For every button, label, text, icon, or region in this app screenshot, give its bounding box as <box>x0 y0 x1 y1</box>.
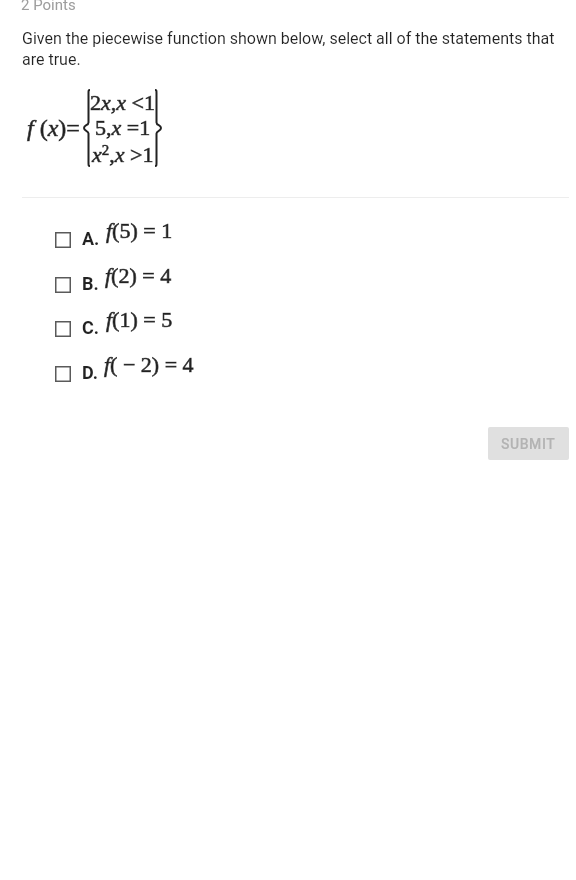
other: Select answer D. <box>55 366 71 382</box>
button[interactable]: Select answer C. <box>0 315 576 343</box>
staticText: SUBMIT <box>501 436 556 452</box>
other: Select answer C. <box>55 321 71 337</box>
button[interactable]: SUBMIT <box>488 427 569 460</box>
button[interactable]: Select answer D. <box>0 360 576 388</box>
staticText: x2,x >1 <box>92 142 154 167</box>
staticText: 2x,x <1 <box>90 90 155 114</box>
other: Select answer B. <box>55 277 71 293</box>
staticText: 5,x =1 <box>95 115 151 139</box>
staticText: f(5) = 1 <box>106 218 173 242</box>
staticText: f(1) = 5 <box>106 307 173 331</box>
staticText: f (x)= <box>27 115 80 142</box>
staticText: 5,x =1 <box>95 115 151 139</box>
staticText: C. <box>82 317 100 338</box>
staticText: f( − 2) = 4 <box>104 352 194 376</box>
staticText: A. <box>82 228 100 249</box>
staticText: f(1) = 5 <box>106 307 173 331</box>
staticText: x2,x >1 <box>92 142 154 167</box>
other: Select answer A. <box>55 232 71 248</box>
staticText: f( − 2) = 4 <box>104 352 194 376</box>
staticText: D. <box>82 362 98 383</box>
staticText: f(2) = 4 <box>105 263 172 287</box>
staticText: f (x)= <box>27 115 80 142</box>
button[interactable]: Select answer B. <box>0 271 576 299</box>
staticText: B. <box>82 273 99 294</box>
staticText: f(2) = 4 <box>105 263 172 287</box>
staticText: 2x,x <1 <box>90 90 155 114</box>
staticText: f(5) = 1 <box>106 218 173 242</box>
staticText: 2 Points <box>21 0 76 14</box>
button[interactable]: Select answer A. <box>0 226 576 254</box>
staticText: Given the piecewise function shown below… <box>22 29 557 69</box>
